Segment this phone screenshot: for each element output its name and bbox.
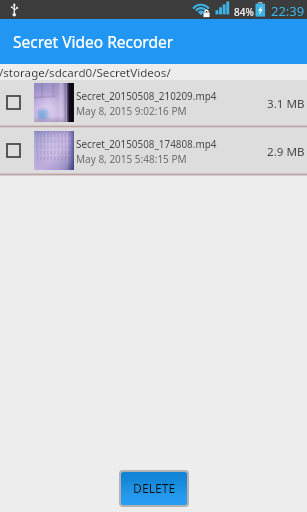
staticText: Secret Video Recorder — [13, 31, 174, 52]
staticText: May 8, 2015 5:48:15 PM — [76, 152, 187, 166]
button[interactable]: DELETE — [121, 472, 187, 505]
staticText: Secret_20150508_174808.mp4 — [76, 137, 217, 150]
staticText: 3.1 MB — [267, 96, 305, 112]
button[interactable]: Secret Video Recorder — [0, 19, 307, 64]
button[interactable]: Select video — [0, 80, 307, 125]
staticText: DELETE — [133, 480, 176, 497]
staticText: /storage/sdcard0/SecretVideos/ — [0, 65, 171, 81]
staticText: 84% — [234, 5, 254, 19]
staticText: 2.9 MB — [267, 144, 305, 160]
button[interactable]: Select video — [6, 95, 21, 110]
button[interactable]: Select video — [0, 128, 307, 173]
staticText: 22:39 — [271, 2, 305, 20]
staticText: Secret_20150508_210209.mp4 — [76, 89, 217, 102]
button[interactable]: Select video — [6, 143, 21, 158]
staticText: May 8, 2015 9:02:16 PM — [76, 104, 187, 118]
